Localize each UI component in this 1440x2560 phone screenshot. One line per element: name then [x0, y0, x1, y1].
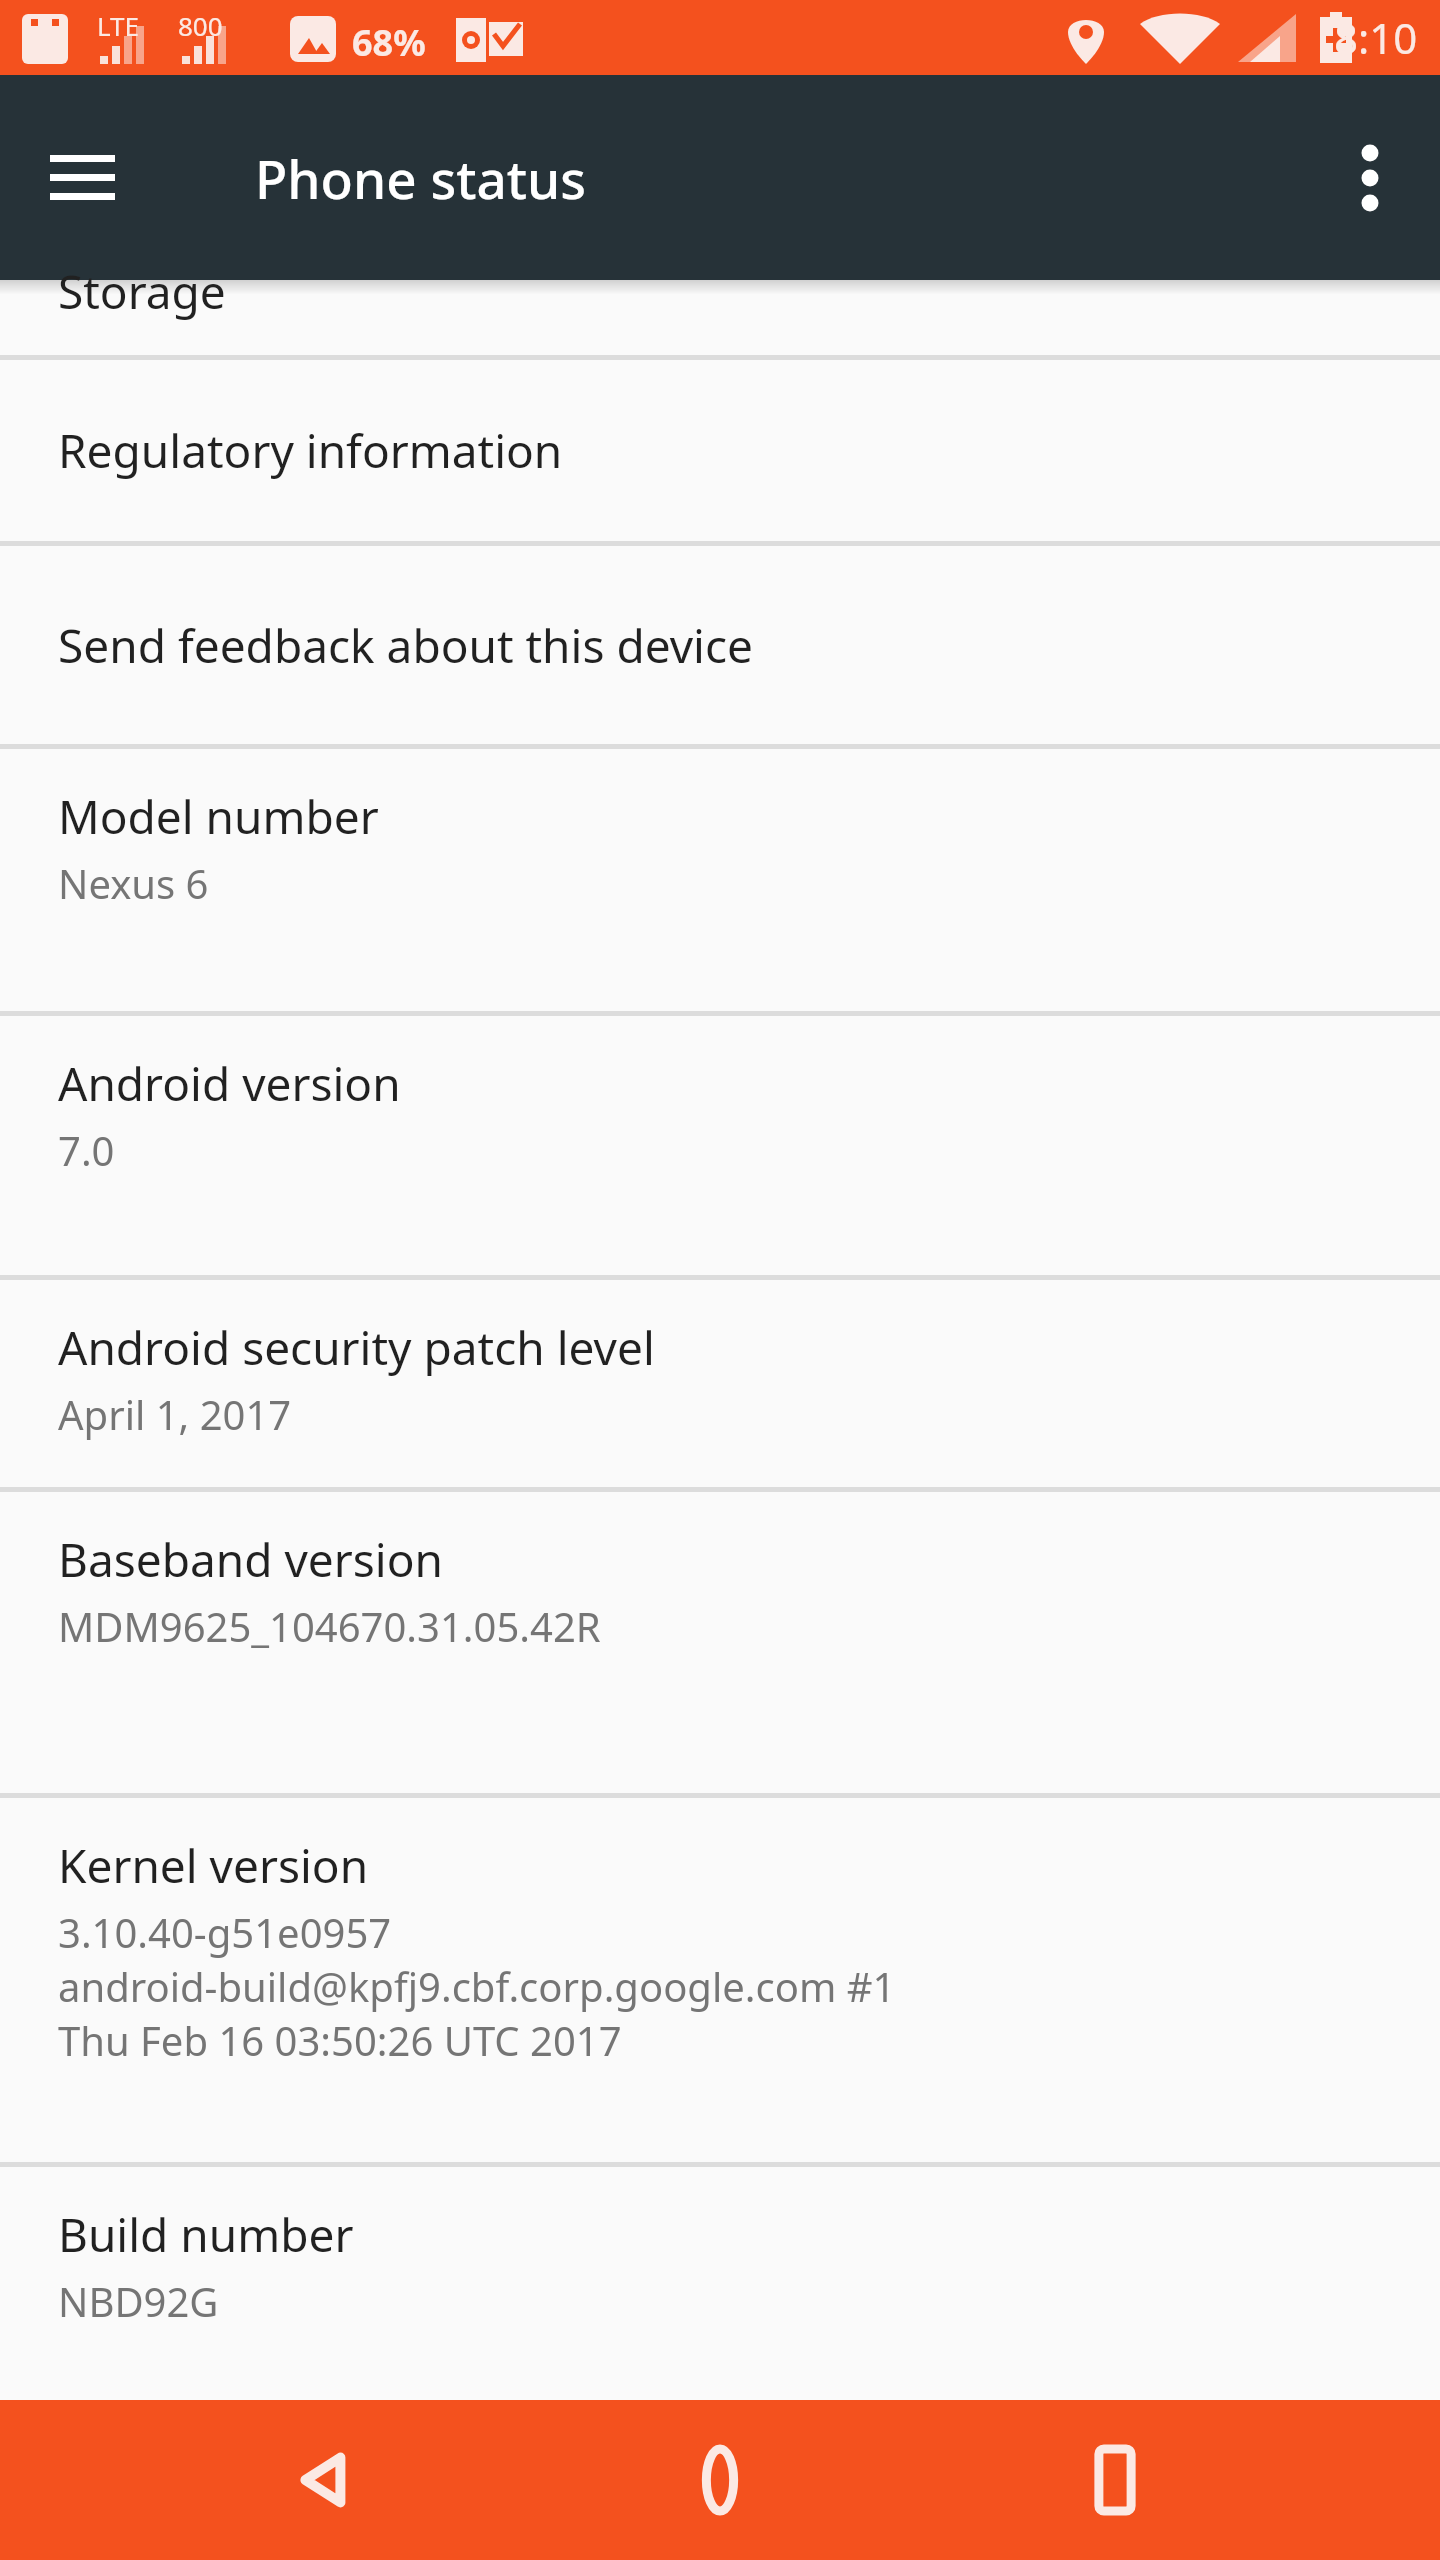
button[interactable]: Android security patch level [0, 1280, 1440, 1487]
staticText: NBD92G [58, 2274, 219, 2328]
staticText: Android security patch level [58, 1316, 655, 1379]
staticText: Kernel version [58, 1834, 369, 1897]
button[interactable]: Home [650, 2410, 790, 2550]
staticText: 7.0 [58, 1123, 115, 1177]
button[interactable]: Regulatory information [0, 360, 1440, 541]
staticText: 68% [352, 18, 426, 67]
button[interactable]: Model number [0, 749, 1440, 1011]
staticText: 8:10 [1334, 9, 1418, 66]
staticText: MDM9625_104670.31.05.42R [58, 1599, 601, 1653]
staticText: Build number [58, 2203, 354, 2266]
button[interactable]: Back [255, 2410, 395, 2550]
staticText: android-build@kpfj9.cbf.corp.google.com … [58, 1959, 896, 2013]
staticText: Send feedback about this device [58, 614, 753, 677]
staticText: Nexus 6 [58, 856, 209, 910]
button[interactable]: Android version [0, 1016, 1440, 1275]
staticText: Baseband version [58, 1528, 443, 1591]
staticText: April 1, 2017 [58, 1387, 292, 1441]
staticText: Regulatory information [58, 419, 563, 482]
staticText: Model number [58, 785, 379, 848]
staticText: 800 [178, 8, 223, 43]
button[interactable]: Kernel version [0, 1798, 1440, 2162]
staticText: Thu Feb 16 03:50:26 UTC 2017 [58, 2013, 622, 2067]
button[interactable]: Recent apps [1045, 2410, 1185, 2550]
button[interactable]: Baseband version [0, 1492, 1440, 1793]
button[interactable]: Navigation menu [30, 125, 135, 230]
button[interactable]: Send feedback about this device [0, 546, 1440, 744]
staticText: Phone status [255, 142, 587, 214]
button[interactable]: Build number [0, 2167, 1440, 2400]
staticText: 3.10.40-g51e0957 [58, 1905, 392, 1959]
button[interactable]: More options [1322, 130, 1418, 226]
staticText: Storage [58, 260, 226, 321]
staticText: Android version [58, 1052, 401, 1115]
staticText: LTE [97, 8, 140, 43]
